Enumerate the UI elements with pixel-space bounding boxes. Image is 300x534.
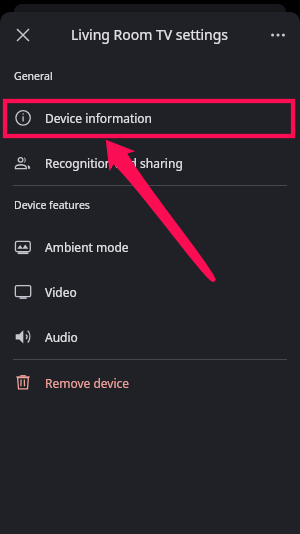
staticText: Device information <box>45 110 153 126</box>
staticText: Living Room TV settings <box>71 25 229 44</box>
staticText: Ambient mode <box>45 239 129 255</box>
button[interactable]: Video <box>0 269 300 314</box>
staticText: Audio <box>45 329 78 345</box>
button[interactable]: Close <box>9 21 36 48</box>
button[interactable]: Remove device <box>0 360 300 405</box>
button[interactable]: Ambient mode <box>0 224 300 269</box>
staticText: Video <box>45 284 77 300</box>
button[interactable]: Recognition and sharing <box>0 140 300 185</box>
button[interactable]: Audio <box>0 314 300 359</box>
button[interactable]: More options <box>264 21 291 48</box>
staticText: Recognition and sharing <box>45 155 183 171</box>
staticText: Device features <box>14 198 90 212</box>
button[interactable]: Device information <box>0 95 300 140</box>
staticText: General <box>14 69 53 83</box>
staticText: Remove device <box>45 375 130 391</box>
